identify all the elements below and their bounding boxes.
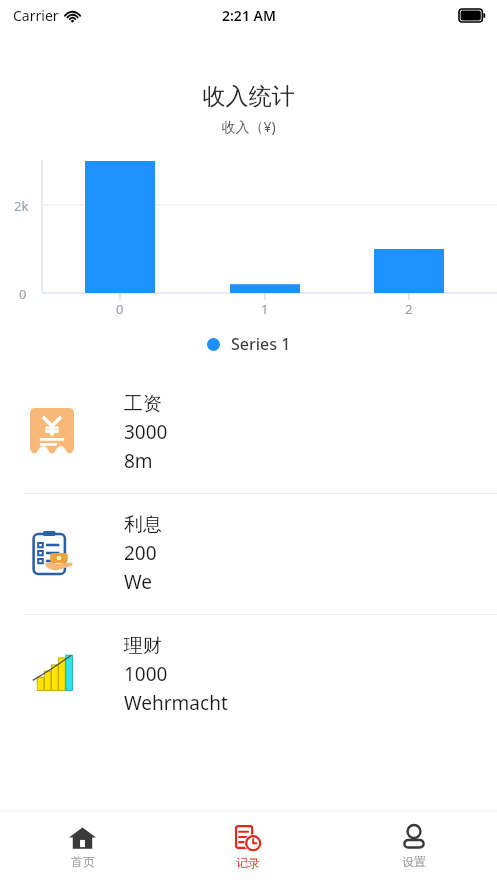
- staticText: 利息: [124, 513, 162, 537]
- button[interactable]: Home: [0, 811, 165, 883]
- staticText: 0: [116, 300, 124, 318]
- button[interactable]: Records: [165, 811, 331, 883]
- staticText: 0: [19, 285, 27, 303]
- staticText: 工资: [124, 392, 162, 416]
- staticText: 记录: [236, 855, 260, 870]
- staticText: 2k: [14, 197, 29, 215]
- staticText: 2:21 AM: [222, 6, 276, 25]
- button[interactable]: Settings: [331, 811, 497, 883]
- staticText: 1: [261, 300, 269, 318]
- staticText: We: [124, 569, 153, 595]
- staticText: 1000: [124, 661, 168, 687]
- staticText: 8m: [124, 448, 153, 474]
- staticText: Carrier: [13, 6, 59, 25]
- staticText: 首页: [71, 854, 95, 869]
- staticText: 理财: [124, 634, 162, 658]
- staticText: 200: [124, 540, 157, 566]
- staticText: 2: [405, 300, 413, 318]
- staticText: 3000: [124, 419, 168, 445]
- button[interactable]: 利息: [0, 494, 497, 614]
- staticText: 收入（¥): [0, 117, 497, 136]
- button[interactable]: 工资: [0, 373, 497, 493]
- staticText: Series 1: [231, 333, 291, 355]
- staticText: Wehrmacht: [124, 690, 228, 716]
- button[interactable]: 理财: [0, 615, 497, 735]
- staticText: 设置: [402, 854, 426, 869]
- staticText: 收入统计: [0, 82, 497, 111]
